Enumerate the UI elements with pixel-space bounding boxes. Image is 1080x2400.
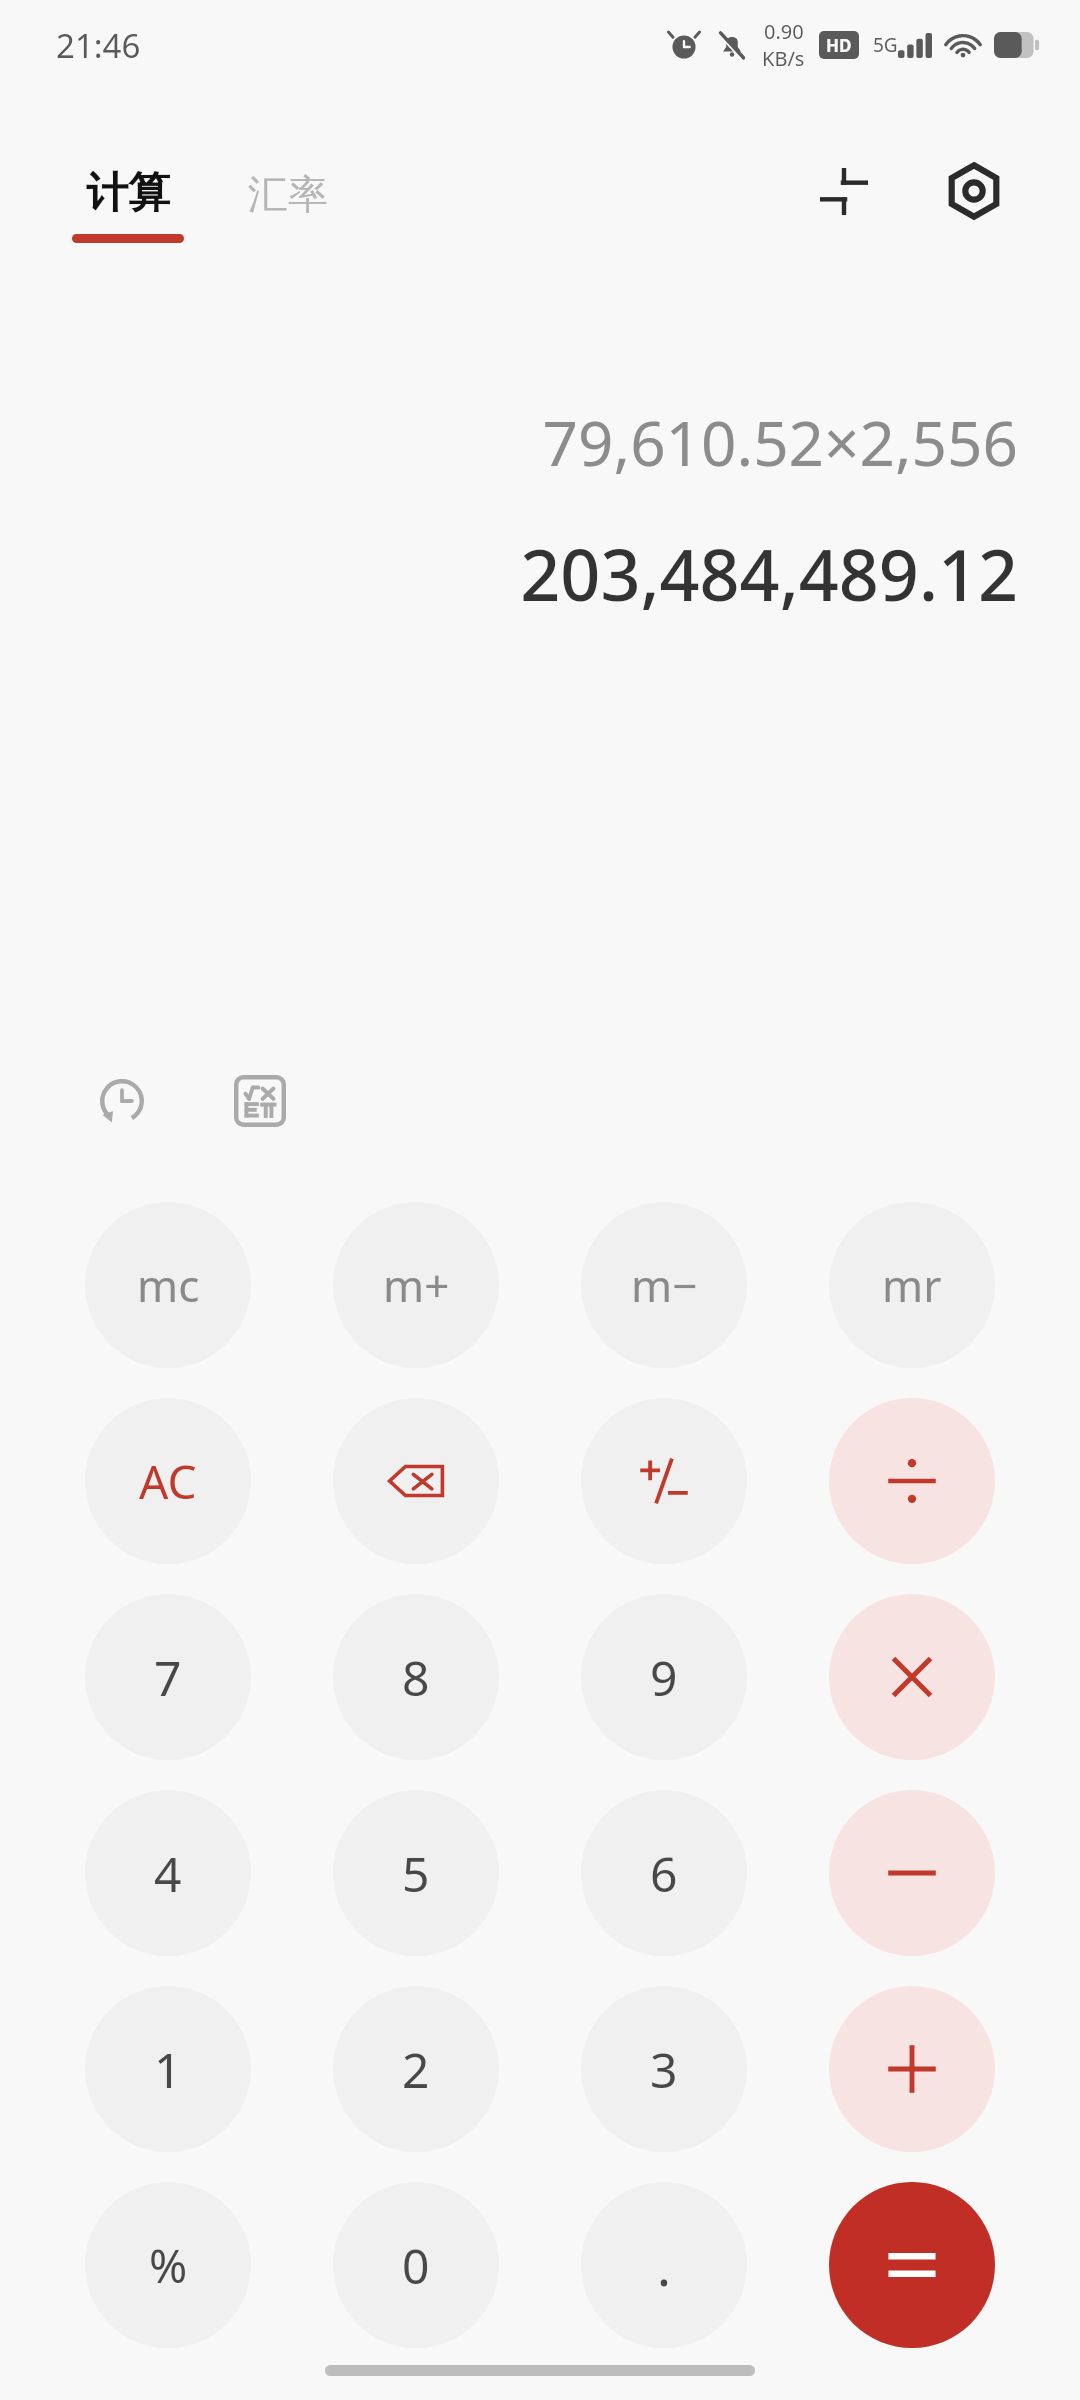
staticText: 9: [650, 1645, 678, 1710]
staticText: AC: [139, 1450, 197, 1513]
staticText: 1: [154, 2037, 182, 2102]
button[interactable]: Backspace: [333, 1398, 499, 1564]
button[interactable]: m−: [581, 1202, 747, 1368]
button[interactable]: 3: [581, 1986, 747, 2152]
button[interactable]: AC: [85, 1398, 251, 1564]
staticText: KB/s: [762, 45, 805, 72]
button[interactable]: 9: [581, 1594, 747, 1760]
button[interactable]: 0: [333, 2182, 499, 2348]
button[interactable]: Settings: [932, 149, 1016, 233]
staticText: .: [657, 2230, 671, 2301]
staticText: 2: [402, 2037, 430, 2102]
staticText: 203,484,489.12: [520, 526, 1018, 621]
button[interactable]: 4: [85, 1790, 251, 1956]
staticText: mc: [137, 1255, 200, 1315]
button[interactable]: Equals: [829, 2182, 995, 2348]
staticText: m−: [631, 1255, 698, 1315]
button[interactable]: 计算: [68, 167, 188, 243]
staticText: 21:46: [56, 23, 141, 68]
staticText: 7: [154, 1645, 182, 1710]
staticText: 5: [402, 1841, 430, 1906]
staticText: 6: [650, 1841, 678, 1906]
button[interactable]: 7: [85, 1594, 251, 1760]
button[interactable]: 汇率: [244, 167, 332, 219]
staticText: 4: [154, 1841, 182, 1906]
button[interactable]: Plus: [829, 1986, 995, 2152]
staticText: HD: [826, 34, 852, 57]
button[interactable]: Divide: [829, 1398, 995, 1564]
staticText: %: [149, 2234, 188, 2297]
button[interactable]: 6: [581, 1790, 747, 1956]
button[interactable]: m+: [333, 1202, 499, 1368]
staticText: 79,610.52×2,556: [542, 400, 1018, 484]
button[interactable]: mc: [85, 1202, 251, 1368]
button[interactable]: 2: [333, 1986, 499, 2152]
staticText: 0: [402, 2233, 430, 2298]
button[interactable]: Collapse: [802, 149, 886, 233]
staticText: m+: [383, 1255, 450, 1315]
button[interactable]: mr: [829, 1202, 995, 1368]
button[interactable]: 5: [333, 1790, 499, 1956]
button[interactable]: History: [86, 1065, 158, 1137]
button[interactable]: .: [581, 2182, 747, 2348]
button[interactable]: 1: [85, 1986, 251, 2152]
button[interactable]: Plus minus: [581, 1398, 747, 1564]
button[interactable]: 8: [333, 1594, 499, 1760]
staticText: 0.90: [764, 18, 804, 45]
staticText: 3: [650, 2037, 678, 2102]
staticText: 汇率: [248, 169, 328, 219]
staticText: 计算: [86, 167, 170, 220]
staticText: 8: [402, 1645, 430, 1710]
button[interactable]: Multiply: [829, 1594, 995, 1760]
button[interactable]: Minus: [829, 1790, 995, 1956]
button[interactable]: Scientific mode: [224, 1065, 296, 1137]
button[interactable]: %: [85, 2182, 251, 2348]
staticText: 5G: [873, 32, 898, 58]
staticText: mr: [882, 1255, 942, 1315]
